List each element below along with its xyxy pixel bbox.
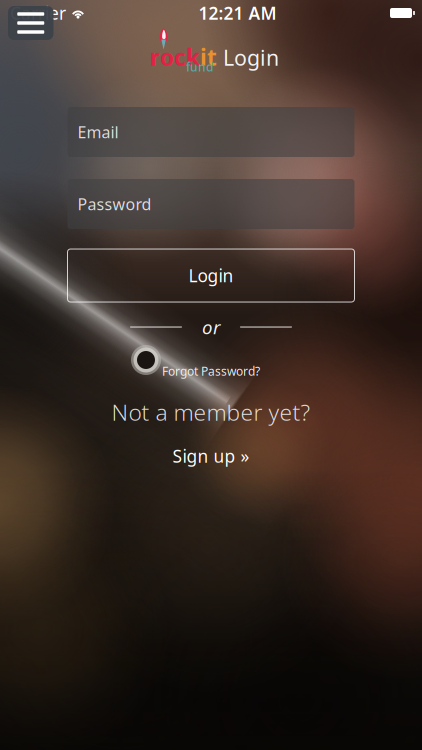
staticText: Password — [77, 193, 151, 215]
button[interactable]: Login — [67, 249, 354, 302]
staticText: Login — [188, 264, 233, 287]
staticText: rock — [150, 42, 200, 72]
staticText: Login — [217, 43, 279, 72]
button[interactable]: Forgot Password? — [0, 361, 422, 381]
button[interactable]: Menu — [8, 6, 53, 40]
staticText: Not a member yet? — [111, 397, 310, 427]
staticText: or — [202, 315, 220, 339]
button[interactable]: Password — [67, 179, 354, 229]
staticText: Forgot Password? — [162, 363, 260, 379]
button[interactable]: Sign up » — [0, 443, 422, 469]
staticText: Email — [77, 121, 118, 143]
staticText: Sign up » — [172, 444, 249, 467]
staticText: it — [200, 42, 217, 72]
staticText: fund — [186, 59, 213, 75]
staticText: Carrier — [10, 1, 66, 24]
button[interactable]: Email — [67, 107, 354, 157]
staticText: 12:21 AM — [198, 1, 276, 24]
